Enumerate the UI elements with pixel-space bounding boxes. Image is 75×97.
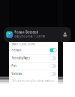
staticText: Baby Room at 1:24PM (14, 35, 44, 38)
staticText: Person (11, 48, 21, 52)
staticText: Friendly Faces (11, 56, 29, 60)
button[interactable]: Pet (9, 62, 58, 70)
button[interactable]: Friendly Faces (9, 54, 58, 62)
staticText: Person Detected (14, 31, 38, 34)
staticText: SMART DETECTIONS (11, 42, 34, 46)
button[interactable]: Person Detected (4, 27, 71, 42)
button[interactable]: Vehicle (9, 70, 58, 78)
button[interactable]: Person (9, 46, 58, 54)
staticText: Pet (11, 64, 16, 68)
staticText: Get alerts only for what matters. (11, 79, 54, 83)
staticText: Vehicle (11, 72, 22, 76)
